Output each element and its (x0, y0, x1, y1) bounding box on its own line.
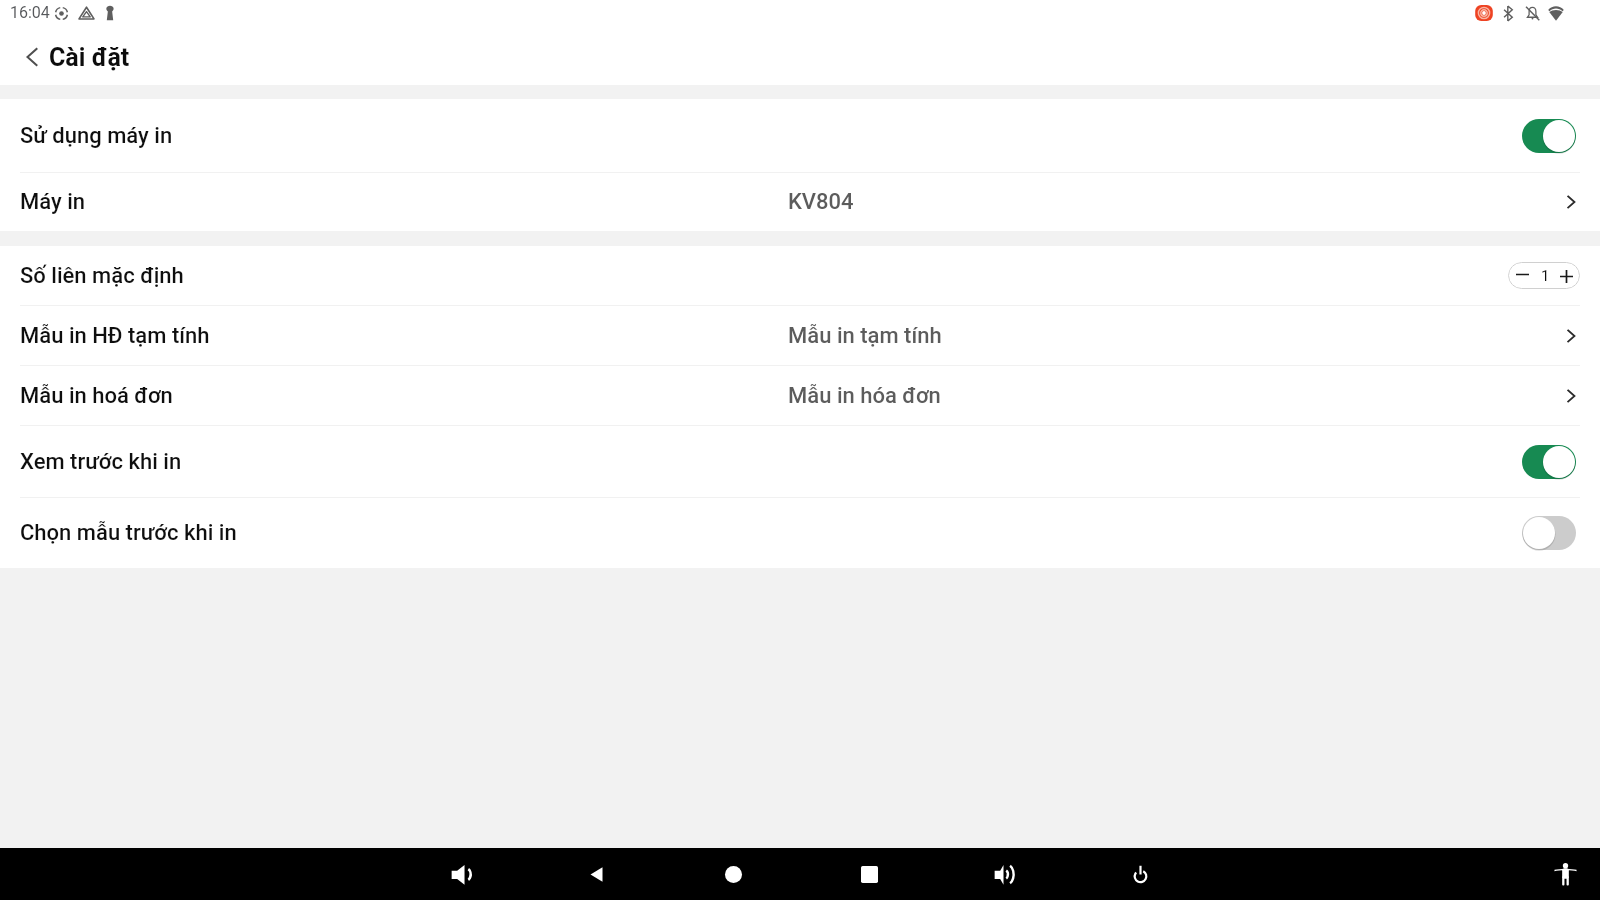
staticText: Mẫu in hóa đơn (788, 383, 941, 409)
button[interactable]: Xem trước khi in (0, 426, 1600, 497)
staticText: Mẫu in HĐ tạm tính (20, 323, 210, 349)
staticText: Sử dụng máy in (20, 123, 173, 149)
button[interactable]: Recents (846, 851, 892, 897)
button[interactable]: Volume down (437, 851, 483, 897)
staticText: KV804 (788, 189, 854, 215)
button[interactable]: Mẫu in hoá đơn (0, 366, 1600, 425)
button[interactable]: Accessibility (1542, 851, 1588, 897)
button[interactable]: Home (710, 851, 756, 897)
staticText: Xem trước khi in (20, 449, 182, 475)
button[interactable]: Máy in (0, 173, 1600, 231)
staticText: 16:04 (10, 3, 50, 22)
button[interactable]: Toggle off (1522, 516, 1576, 550)
button[interactable]: Toggle on (1522, 119, 1576, 153)
staticText: Số liên mặc định (20, 263, 184, 289)
button[interactable]: Sử dụng máy in (0, 99, 1600, 172)
button[interactable]: Số liên mặc định (0, 246, 1600, 305)
staticText: Cài đặt (49, 43, 130, 72)
staticText: 1 (1541, 267, 1550, 285)
button[interactable]: Volume up (980, 851, 1026, 897)
staticText: Mẫu in tạm tính (788, 323, 942, 349)
button[interactable]: Mẫu in HĐ tạm tính (0, 306, 1600, 365)
staticText: Máy in (20, 189, 86, 215)
button[interactable]: Increase (1554, 264, 1578, 288)
staticText: Chọn mẫu trước khi in (20, 520, 237, 546)
button[interactable]: Decrease (1510, 262, 1534, 286)
button[interactable]: Toggle on (1522, 445, 1576, 479)
staticText: Mẫu in hoá đơn (20, 383, 173, 409)
button[interactable]: Power (1117, 851, 1163, 897)
button[interactable]: Chọn mẫu trước khi in (0, 498, 1600, 568)
button[interactable]: Back (10, 35, 54, 79)
button[interactable]: Back (573, 851, 619, 897)
